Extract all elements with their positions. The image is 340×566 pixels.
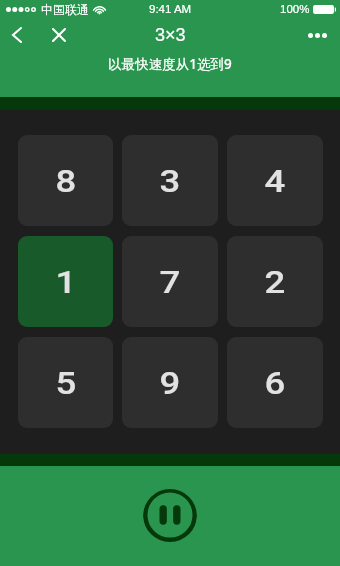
button[interactable]: 8 [18, 135, 113, 226]
staticText: 7 [159, 264, 181, 300]
staticText: 2 [264, 264, 286, 300]
button[interactable]: 5 [18, 337, 113, 428]
button[interactable]: 9 [122, 337, 218, 428]
button[interactable]: 3 [122, 135, 218, 226]
staticText: 9:41 AM [149, 3, 192, 16]
button[interactable]: Back [2, 20, 32, 50]
staticText: 3×3 [155, 25, 186, 45]
staticText: 中国联通 [41, 2, 89, 17]
staticText: 8 [55, 163, 77, 199]
staticText: 以最快速度从1选到9 [108, 55, 232, 73]
staticText: 5 [55, 365, 77, 401]
button[interactable]: 6 [227, 337, 323, 428]
staticText: 4 [264, 163, 286, 199]
button[interactable]: Close [43, 19, 75, 51]
button[interactable]: More options [301, 19, 333, 51]
staticText: 9 [159, 365, 181, 401]
button[interactable]: 1 [18, 236, 113, 327]
staticText: 1 [55, 264, 77, 300]
button[interactable]: 4 [227, 135, 323, 226]
staticText: 3 [159, 163, 181, 199]
staticText: 6 [264, 365, 286, 401]
button[interactable]: 7 [122, 236, 218, 327]
staticText: 100% [280, 3, 310, 16]
button[interactable]: Pause [143, 489, 197, 542]
button[interactable]: 2 [227, 236, 323, 327]
